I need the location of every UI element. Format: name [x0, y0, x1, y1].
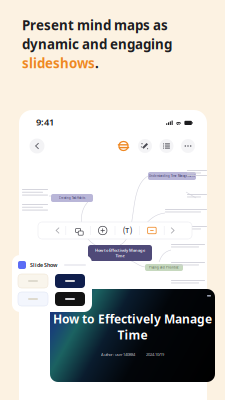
button[interactable]: Outline: [159, 139, 173, 153]
staticText: 9:41: [36, 116, 54, 128]
staticText: ): [130, 225, 132, 236]
button[interactable]: Shapes: [66, 222, 90, 239]
staticText: 2024.10/19: [146, 352, 164, 357]
staticText: Time: [117, 327, 147, 343]
staticText: How to Effectively Manage: [95, 248, 145, 253]
button[interactable]: Previous: [49, 222, 65, 239]
button[interactable]: Next: [164, 222, 180, 239]
staticText: Placing and Prioritise: [149, 266, 179, 269]
staticText: (: [123, 225, 125, 236]
button[interactable]: Present: [116, 139, 130, 153]
staticText: Creating Task Habits: [59, 196, 85, 200]
staticText: Slide Show: [30, 261, 57, 269]
button[interactable]: Draw: [138, 139, 152, 153]
button[interactable]: Text style: [115, 222, 139, 239]
staticText: dynamic and engaging: [22, 35, 172, 53]
button[interactable]: Back: [29, 138, 45, 154]
staticText: Present mind maps as: [22, 16, 168, 34]
staticText: How to Effectively Manage: [53, 311, 212, 327]
staticText: slideshows: [22, 54, 95, 72]
button[interactable]: Add node: [91, 222, 115, 239]
staticText: Time: [115, 253, 124, 258]
button[interactable]: Slide show: [140, 222, 164, 239]
staticText: .: [95, 54, 99, 72]
staticText: T: [125, 226, 129, 235]
staticText: Author: user140884: [101, 352, 135, 357]
staticText: Understanding Time Management: [149, 174, 195, 178]
button[interactable]: More: [181, 139, 195, 153]
